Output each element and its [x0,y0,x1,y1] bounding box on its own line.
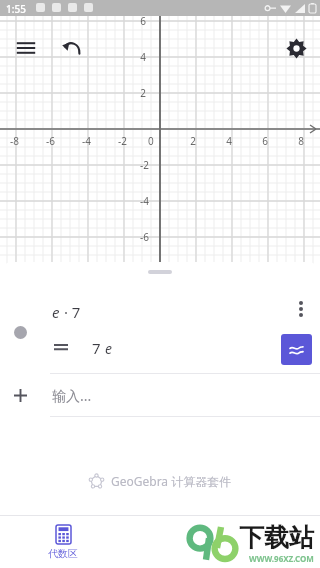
staticText: -2 [118,134,127,148]
staticText: -8 [10,134,19,148]
staticText: 2 [190,134,196,148]
button[interactable]: e [0,276,320,374]
staticText: -4 [82,134,91,148]
staticText: -6 [140,230,149,244]
staticText: GeoGebra 计算器套件 [111,473,232,489]
staticText: -6 [46,134,55,148]
button[interactable]: Undo [55,32,87,64]
button[interactable]: 代数区 [30,516,96,568]
staticText: e [105,339,112,358]
staticText: 下载站 [239,522,314,553]
staticText: 4 [140,50,146,64]
button[interactable]: Approximate value [281,334,312,365]
staticText: -4 [140,194,149,208]
staticText: 1:55 [6,2,26,16]
staticText: 0 [148,134,154,148]
staticText: 8 [298,134,304,148]
staticText: 6 [262,134,268,148]
staticText: 2 [140,86,146,100]
staticText: 6 [140,14,146,28]
button[interactable]: 输入... [0,374,320,417]
staticText: · 7 [60,302,81,322]
staticText: 代数区 [48,547,78,560]
staticText: e [52,302,60,322]
button[interactable]: Menu [10,32,42,64]
staticText: 输入... [52,386,92,405]
button[interactable]: Settings [280,32,312,64]
staticText: WWW.96XZ.COM [249,553,314,564]
staticText: 4 [226,134,232,148]
staticText: -2 [140,158,149,172]
staticText: 7 [92,338,105,358]
button[interactable]: More options [286,294,316,324]
